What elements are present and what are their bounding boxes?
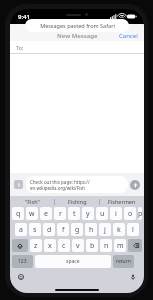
button[interactable]: i xyxy=(110,207,122,220)
staticText: 123 xyxy=(18,258,27,265)
staticText: Fishermen xyxy=(108,198,136,205)
button[interactable]: k xyxy=(113,223,125,236)
staticText: n xyxy=(104,241,109,251)
staticText: New Message xyxy=(57,32,98,40)
button[interactable]: x xyxy=(44,239,56,252)
button[interactable]: d xyxy=(43,223,55,236)
staticText: k xyxy=(117,225,121,235)
button[interactable]: c xyxy=(58,239,70,252)
button[interactable]: f xyxy=(57,223,69,236)
button[interactable]: Backspace xyxy=(128,239,142,252)
staticText: i xyxy=(115,209,117,219)
button[interactable]: g xyxy=(71,223,83,236)
button[interactable]: a xyxy=(15,223,27,236)
staticText: Messages pasted from Safari xyxy=(40,22,115,29)
staticText: b xyxy=(90,241,95,251)
staticText: Cancel xyxy=(119,32,138,40)
button[interactable]: e xyxy=(40,207,52,220)
button[interactable]: r xyxy=(54,207,66,220)
button[interactable]: m xyxy=(114,239,126,252)
staticText: space xyxy=(66,258,80,265)
button[interactable]: Check out this page: https:// en.wikiped… xyxy=(26,176,128,193)
button[interactable]: b xyxy=(86,239,98,252)
staticText: x xyxy=(48,241,52,251)
button[interactable]: o xyxy=(124,207,136,220)
button[interactable]: z xyxy=(30,239,42,252)
staticText: a xyxy=(19,225,23,235)
staticText: l xyxy=(132,225,134,235)
button[interactable]: n xyxy=(100,239,112,252)
staticText: "Fish" xyxy=(25,198,40,205)
staticText: y xyxy=(86,209,90,219)
staticText: e xyxy=(44,209,48,219)
staticText: Check out this page: https:// en.wikiped… xyxy=(30,179,90,191)
button[interactable]: y xyxy=(82,207,94,220)
button[interactable]: Fishing xyxy=(55,196,99,207)
button[interactable]: t xyxy=(68,207,80,220)
button[interactable]: j xyxy=(99,223,111,236)
button[interactable]: Messages pasted from Safari xyxy=(25,19,129,32)
button[interactable]: "Fish" xyxy=(10,196,54,207)
staticText: f xyxy=(62,225,65,235)
staticText: o xyxy=(128,209,133,219)
button[interactable]: s xyxy=(29,223,41,236)
button[interactable]: Emoji xyxy=(17,273,25,281)
button[interactable]: w xyxy=(26,207,38,220)
staticText: t xyxy=(73,209,76,219)
staticText: p xyxy=(138,209,142,219)
staticText: return xyxy=(116,258,131,265)
staticText: j xyxy=(104,225,106,235)
button[interactable]: space xyxy=(35,255,111,268)
button[interactable]: Cancel xyxy=(117,31,140,41)
staticText: 9:41 xyxy=(18,13,30,21)
staticText: z xyxy=(34,241,38,251)
staticText: h xyxy=(89,225,94,235)
button[interactable]: return xyxy=(113,255,134,268)
button[interactable]: h xyxy=(85,223,97,236)
staticText: u xyxy=(100,209,105,219)
staticText: To: xyxy=(16,44,24,51)
button[interactable]: 123 xyxy=(12,255,33,268)
button[interactable]: Dictation xyxy=(129,273,137,281)
button[interactable]: q xyxy=(12,207,24,220)
button[interactable]: p xyxy=(138,207,142,220)
staticText: s xyxy=(33,225,37,235)
button[interactable]: Shift xyxy=(12,239,28,252)
staticText: c xyxy=(62,241,66,251)
staticText: q xyxy=(16,209,21,219)
staticText: Fishing xyxy=(68,198,87,205)
button[interactable]: Send xyxy=(130,180,140,190)
button[interactable]: Fishermen xyxy=(100,196,144,207)
staticText: v xyxy=(76,241,80,251)
staticText: m xyxy=(117,241,124,251)
button[interactable]: u xyxy=(96,207,108,220)
button[interactable]: Apps xyxy=(14,180,23,189)
button[interactable]: l xyxy=(127,223,139,236)
staticText: w xyxy=(29,209,35,219)
staticText: r xyxy=(59,209,62,219)
staticText: d xyxy=(47,225,52,235)
button[interactable]: v xyxy=(72,239,84,252)
staticText: g xyxy=(75,225,80,235)
